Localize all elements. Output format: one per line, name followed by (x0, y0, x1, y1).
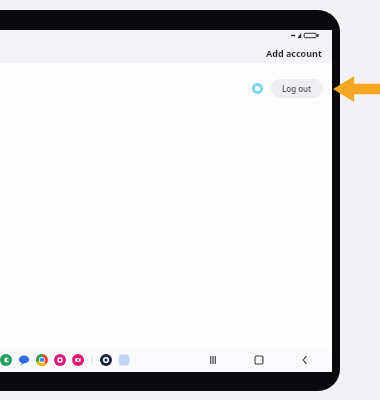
button[interactable]: App 3 (54, 354, 66, 366)
staticText: Log out (282, 83, 312, 94)
button[interactable]: App 1 (18, 354, 30, 366)
button[interactable]: Account status (252, 83, 263, 94)
button[interactable]: Recents (206, 353, 220, 367)
button[interactable]: App 0 (0, 354, 12, 366)
button[interactable]: Back (298, 353, 312, 367)
button[interactable]: Home (252, 353, 266, 367)
button[interactable]: App 4 (72, 354, 84, 366)
button[interactable]: Add account (266, 47, 322, 59)
button[interactable]: App 2 (36, 354, 48, 366)
button[interactable]: App 5 (100, 354, 112, 366)
button[interactable]: App 6 (118, 354, 130, 366)
button[interactable]: Log out (271, 79, 323, 98)
